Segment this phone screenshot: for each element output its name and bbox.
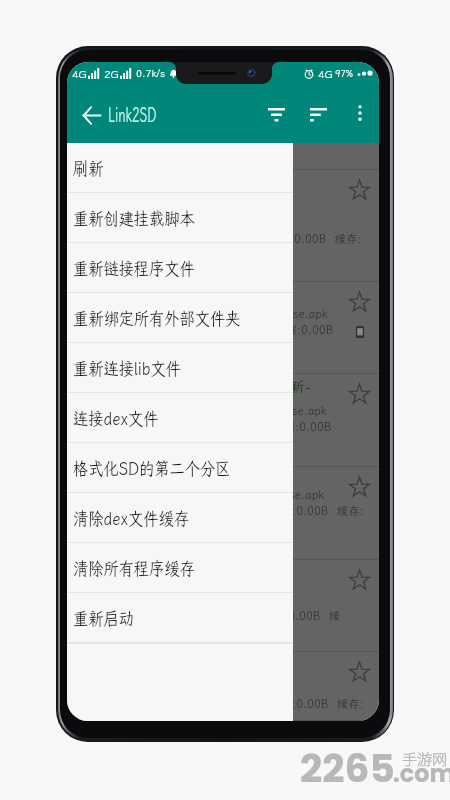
button[interactable]: 连接dex文件 xyxy=(67,393,293,443)
staticText: 重新链接程序文件 xyxy=(73,256,195,280)
staticText: 刷新 xyxy=(73,156,103,180)
button[interactable]: 重新绑定所有外部文件夹 xyxy=(67,293,293,343)
staticText: 应用大小:8.00MB 数据:0.00B 缓 xyxy=(161,608,340,623)
staticText: 手游网 xyxy=(402,748,448,770)
staticText: 2265 xyxy=(300,741,395,796)
button[interactable]: Filter xyxy=(256,95,296,135)
button[interactable]: 重新链接程序文件 xyxy=(67,243,293,293)
button[interactable]: 应用大小:8.00MB 数据:0.00B 缓 xyxy=(67,560,379,652)
staticText: Link2SD xyxy=(108,100,157,128)
button[interactable]: 应用大小:2.00MB 数据:0.00B 缓存: xyxy=(67,652,379,721)
button[interactable]: More options xyxy=(342,95,378,131)
staticText: /data/app/com.tools/base.apk xyxy=(164,487,325,502)
staticText: 应用大小:10.00MB 数据:0.00B xyxy=(167,322,334,337)
staticText: 应用大小:6.00MB 数据:0.00B 缓存: xyxy=(169,503,364,518)
button[interactable]: 清除所有程序缓存 xyxy=(67,543,293,593)
staticText: .com xyxy=(393,757,450,791)
staticText: 应用大小:5.00MB 数据:0.00B xyxy=(172,419,332,434)
staticText: /data/app/com.demo.app/base.apk xyxy=(141,306,328,321)
button[interactable]: 重新创建挂载脚本 xyxy=(67,193,293,243)
staticText: 4G xyxy=(318,67,333,81)
staticText: /data/app/com.x.y/base.apk xyxy=(177,403,327,418)
staticText: 2G xyxy=(104,67,119,81)
staticText: 连接dex文件 xyxy=(73,406,159,430)
staticText: 清除dex文件缓存 xyxy=(73,506,190,530)
staticText: 应用更新- xyxy=(245,377,311,397)
staticText: 应用大小:10.00MB 数据:0.00B 缓存: xyxy=(160,231,362,246)
button[interactable]: Sort xyxy=(298,95,338,135)
staticText: 重新创建挂载脚本 xyxy=(73,206,195,230)
staticText: 清除所有程序缓存 xyxy=(73,556,195,580)
staticText: 0.7k/s xyxy=(136,67,166,80)
button[interactable]: /data/app/com.demo.app/base.apk xyxy=(67,282,379,374)
staticText: 重新连接lib文件 xyxy=(73,356,181,380)
staticText: 重新绑定所有外部文件夹 xyxy=(73,306,240,330)
button[interactable]: 格式化SD的第二个分区 xyxy=(67,443,293,493)
staticText: 4G xyxy=(72,67,87,81)
button[interactable]: Back xyxy=(71,95,111,135)
staticText: 应用大小:2.00MB 数据:0.00B 缓存: xyxy=(169,696,364,711)
staticText: 格式化SD的第二个分区 xyxy=(73,456,231,480)
button[interactable]: 重新连接lib文件 xyxy=(67,343,293,393)
button[interactable]: /data/app/com.tools/base.apk xyxy=(67,467,379,560)
staticText: 97% xyxy=(335,68,354,80)
staticText: 重新启动 xyxy=(73,606,134,630)
button[interactable]: 重新启动 xyxy=(67,593,293,643)
button[interactable]: 刷新 xyxy=(67,143,293,193)
button[interactable]: 清除dex文件缓存 xyxy=(67,493,293,543)
button[interactable]: 应用大小:10.00MB 数据:0.00B 缓存: xyxy=(67,170,379,282)
button[interactable]: 应用更新- xyxy=(67,374,379,467)
